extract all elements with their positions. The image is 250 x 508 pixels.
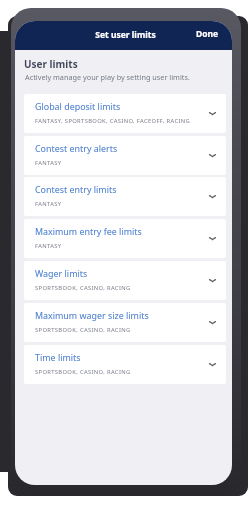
staticText: Maximum wager size limits bbox=[35, 309, 149, 321]
staticText: SPORTSBOOK, CASINO, RACING bbox=[35, 326, 131, 334]
staticText: FANTASY, SPORTSBOOK, CASINO, FACEOFF, RA… bbox=[35, 117, 191, 125]
staticText: Contest entry limits bbox=[35, 183, 117, 195]
staticText: FANTASY bbox=[35, 242, 62, 250]
staticText: Time limits bbox=[35, 351, 81, 363]
staticText: Set user limits bbox=[17, 29, 232, 41]
staticText: Actively manage your play by setting use… bbox=[25, 72, 190, 82]
other: Expand bbox=[208, 192, 217, 201]
staticText: Maximum entry fee limits bbox=[35, 225, 142, 237]
other: Expand bbox=[208, 360, 217, 369]
button[interactable]: Contest entry limits bbox=[24, 177, 226, 216]
other: Expand bbox=[208, 234, 217, 243]
staticText: Done bbox=[196, 28, 219, 40]
button[interactable]: Contest entry alerts bbox=[24, 136, 226, 175]
staticText: FANTASY bbox=[35, 159, 62, 167]
button[interactable]: Wager limits bbox=[24, 261, 226, 300]
staticText: FANTASY bbox=[35, 200, 62, 208]
button[interactable]: Global deposit limits bbox=[24, 94, 226, 133]
button[interactable]: Maximum wager size limits bbox=[24, 303, 226, 342]
staticText: Contest entry alerts bbox=[35, 142, 118, 154]
other: Expand bbox=[208, 109, 217, 118]
other: Expand bbox=[208, 318, 217, 327]
staticText: SPORTSBOOK, CASINO, RACING bbox=[35, 368, 131, 376]
staticText: User limits bbox=[24, 57, 78, 71]
other: Expand bbox=[208, 276, 217, 285]
staticText: Wager limits bbox=[35, 267, 88, 279]
button[interactable]: Maximum entry fee limits bbox=[24, 219, 226, 258]
other: Expand bbox=[208, 151, 217, 160]
staticText: SPORTSBOOK, CASINO, RACING bbox=[35, 284, 131, 292]
staticText: Global deposit limits bbox=[35, 100, 121, 112]
button[interactable]: Time limits bbox=[24, 345, 226, 384]
button[interactable]: Done bbox=[186, 24, 232, 48]
